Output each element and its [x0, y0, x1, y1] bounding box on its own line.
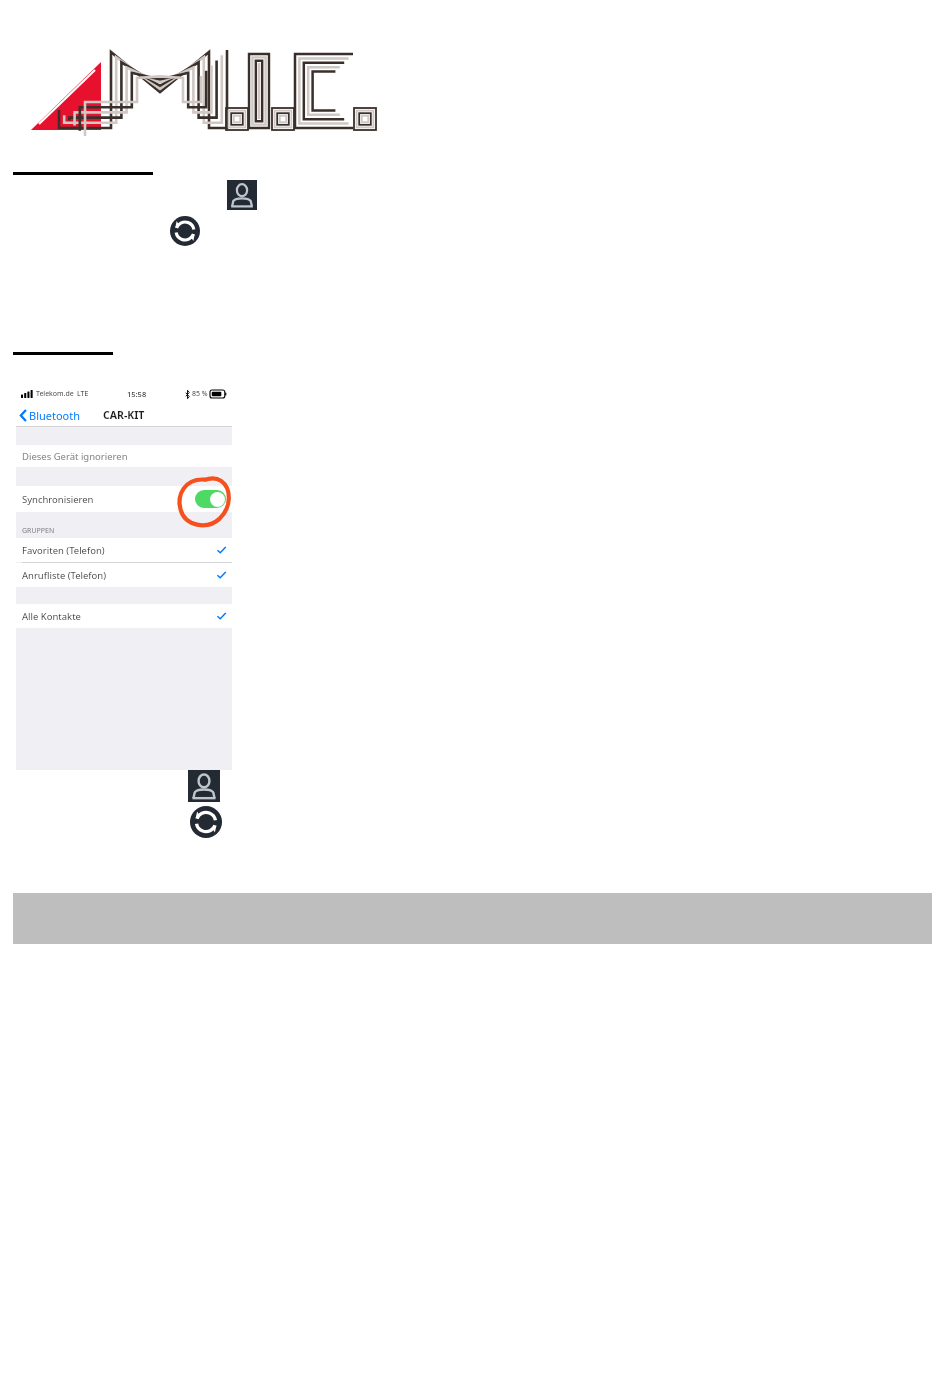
staticText: Bluetooth [29, 408, 81, 423]
button[interactable]: Synchronize [170, 216, 200, 246]
button[interactable]: Synchronize [190, 806, 222, 838]
button[interactable]: Synchronize toggle [195, 490, 226, 508]
button[interactable]: Alle Kontakte [16, 604, 232, 628]
staticText: Dieses Gerät ignorieren [22, 450, 128, 463]
staticText: GRUPPEN [22, 526, 55, 536]
button[interactable]: Bluetooth [20, 403, 232, 427]
button[interactable]: Anrufliste (Telefon) [16, 563, 232, 587]
staticText: Synchronisieren [22, 493, 94, 506]
staticText: 15:58 [127, 389, 147, 399]
staticText: 85 % [192, 389, 208, 399]
staticText: Favoriten (Telefon) [22, 544, 105, 557]
button[interactable]: Synchronisieren [16, 486, 232, 512]
button[interactable]: Contacts [188, 770, 220, 802]
staticText: Anrufliste (Telefon) [22, 569, 107, 582]
button[interactable]: Favoriten (Telefon) [16, 538, 232, 562]
button[interactable]: Dieses Gerät ignorieren [16, 445, 232, 467]
button[interactable]: Contacts [227, 180, 257, 210]
staticText: Alle Kontakte [22, 610, 81, 623]
staticText: LTE [77, 389, 89, 399]
staticText: CAR-KIT [103, 408, 145, 422]
staticText: Telekom.de [36, 389, 74, 399]
